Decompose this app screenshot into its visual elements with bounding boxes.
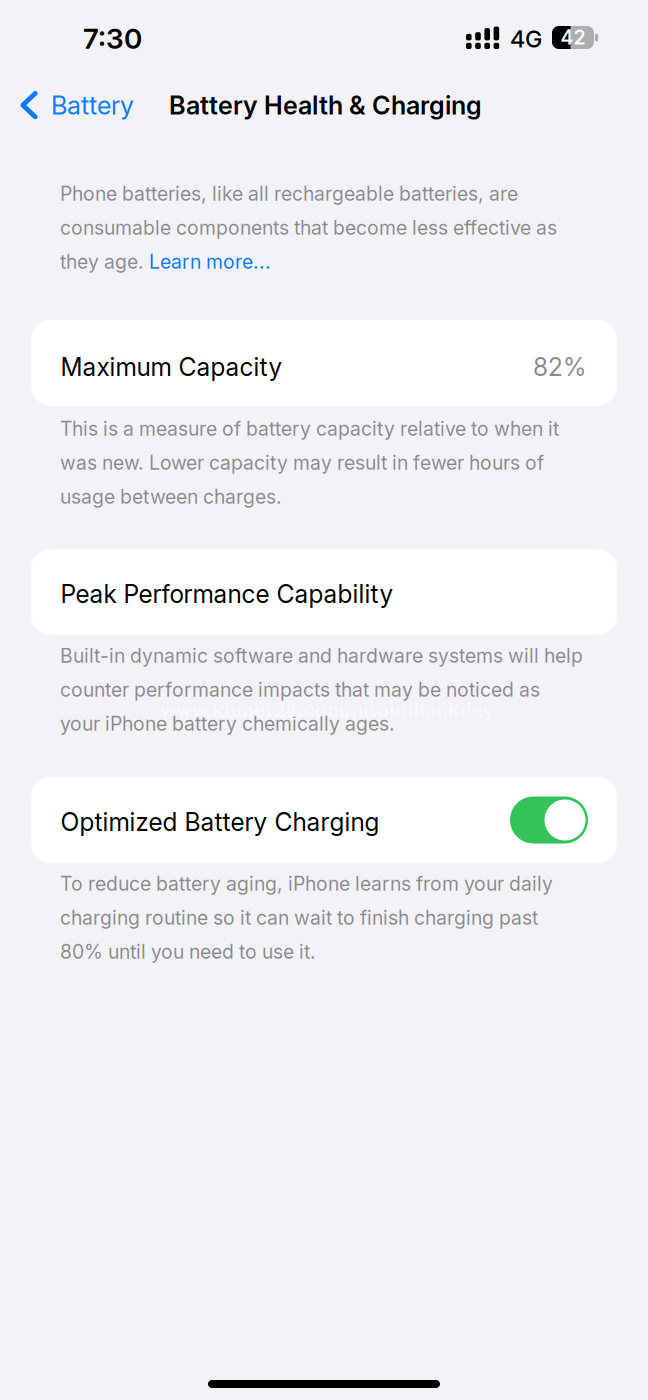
staticText: was new. Lower capacity may result in fe… [60,451,544,474]
staticText: Phone batteries, like all rechargeable b… [60,182,518,205]
staticText: your iPhone battery chemically ages. [60,712,395,735]
staticText: consumable components that become less e… [60,216,557,239]
staticText: 80% until you need to use it. [60,940,316,963]
staticText: To reduce battery aging, iPhone learns f… [60,872,553,895]
staticText: 4G [510,25,542,53]
staticText: Peak Performance Capability [60,579,393,609]
staticText: Optimized Battery Charging [60,807,379,837]
staticText: 7:30 [83,21,142,55]
staticText: charging routine so it can wait to finis… [60,906,538,929]
staticText: www.khmer24.com/pitouphankdey [160,699,494,721]
button[interactable]: Optimized Battery Charging, on [510,796,588,843]
button[interactable]: Learn more... [149,250,271,273]
staticText: usage between charges. [60,485,282,508]
staticText: This is a measure of battery capacity re… [60,417,559,440]
button[interactable]: Battery [6,81,150,130]
staticText: Learn more... [149,250,271,273]
staticText: they age. [60,250,149,273]
staticText: 42 [560,26,585,49]
staticText: 82% [533,352,586,382]
button[interactable]: Peak Performance Capability [31,549,617,635]
staticText: Built-in dynamic software and hardware s… [60,644,583,667]
staticText: counter performance impacts that may be … [60,678,540,701]
staticText: Battery Health & Charging [169,90,482,121]
staticText: Maximum Capacity [60,352,282,382]
staticText: Battery [51,90,134,121]
